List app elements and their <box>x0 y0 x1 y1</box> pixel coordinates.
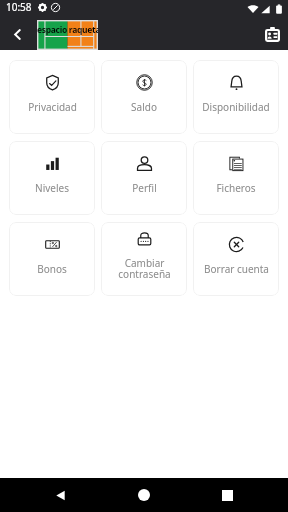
staticText: Cambiar contraseña <box>118 256 171 281</box>
button[interactable]: Profile card <box>260 22 284 46</box>
staticText: Privacidad <box>28 100 77 114</box>
staticText: Saldo <box>131 100 157 114</box>
staticText: Borrar cuenta <box>204 262 269 276</box>
button[interactable]: Bonos <box>9 222 95 296</box>
staticText: Disponibilidad <box>202 100 270 114</box>
button[interactable]: Cambiar contraseña <box>101 222 187 296</box>
button[interactable]: Back <box>5 22 29 46</box>
button[interactable]: Back <box>45 480 75 510</box>
button[interactable]: Recents <box>212 480 242 510</box>
staticText: 10:58 <box>6 0 32 14</box>
button[interactable]: Home <box>129 480 159 510</box>
button[interactable]: Ficheros <box>193 141 279 215</box>
staticText: Ficheros <box>216 181 256 195</box>
button[interactable]: Perfil <box>101 141 187 215</box>
button[interactable]: Privacidad <box>9 60 95 134</box>
staticText: Niveles <box>35 181 69 195</box>
staticText: Perfil <box>132 181 157 195</box>
staticText: espacio raqueta <box>37 24 98 36</box>
button[interactable]: Borrar cuenta <box>193 222 279 296</box>
button[interactable]: Saldo <box>101 60 187 134</box>
button[interactable]: Niveles <box>9 141 95 215</box>
staticText: Bonos <box>37 262 67 276</box>
button[interactable]: Disponibilidad <box>193 60 279 134</box>
